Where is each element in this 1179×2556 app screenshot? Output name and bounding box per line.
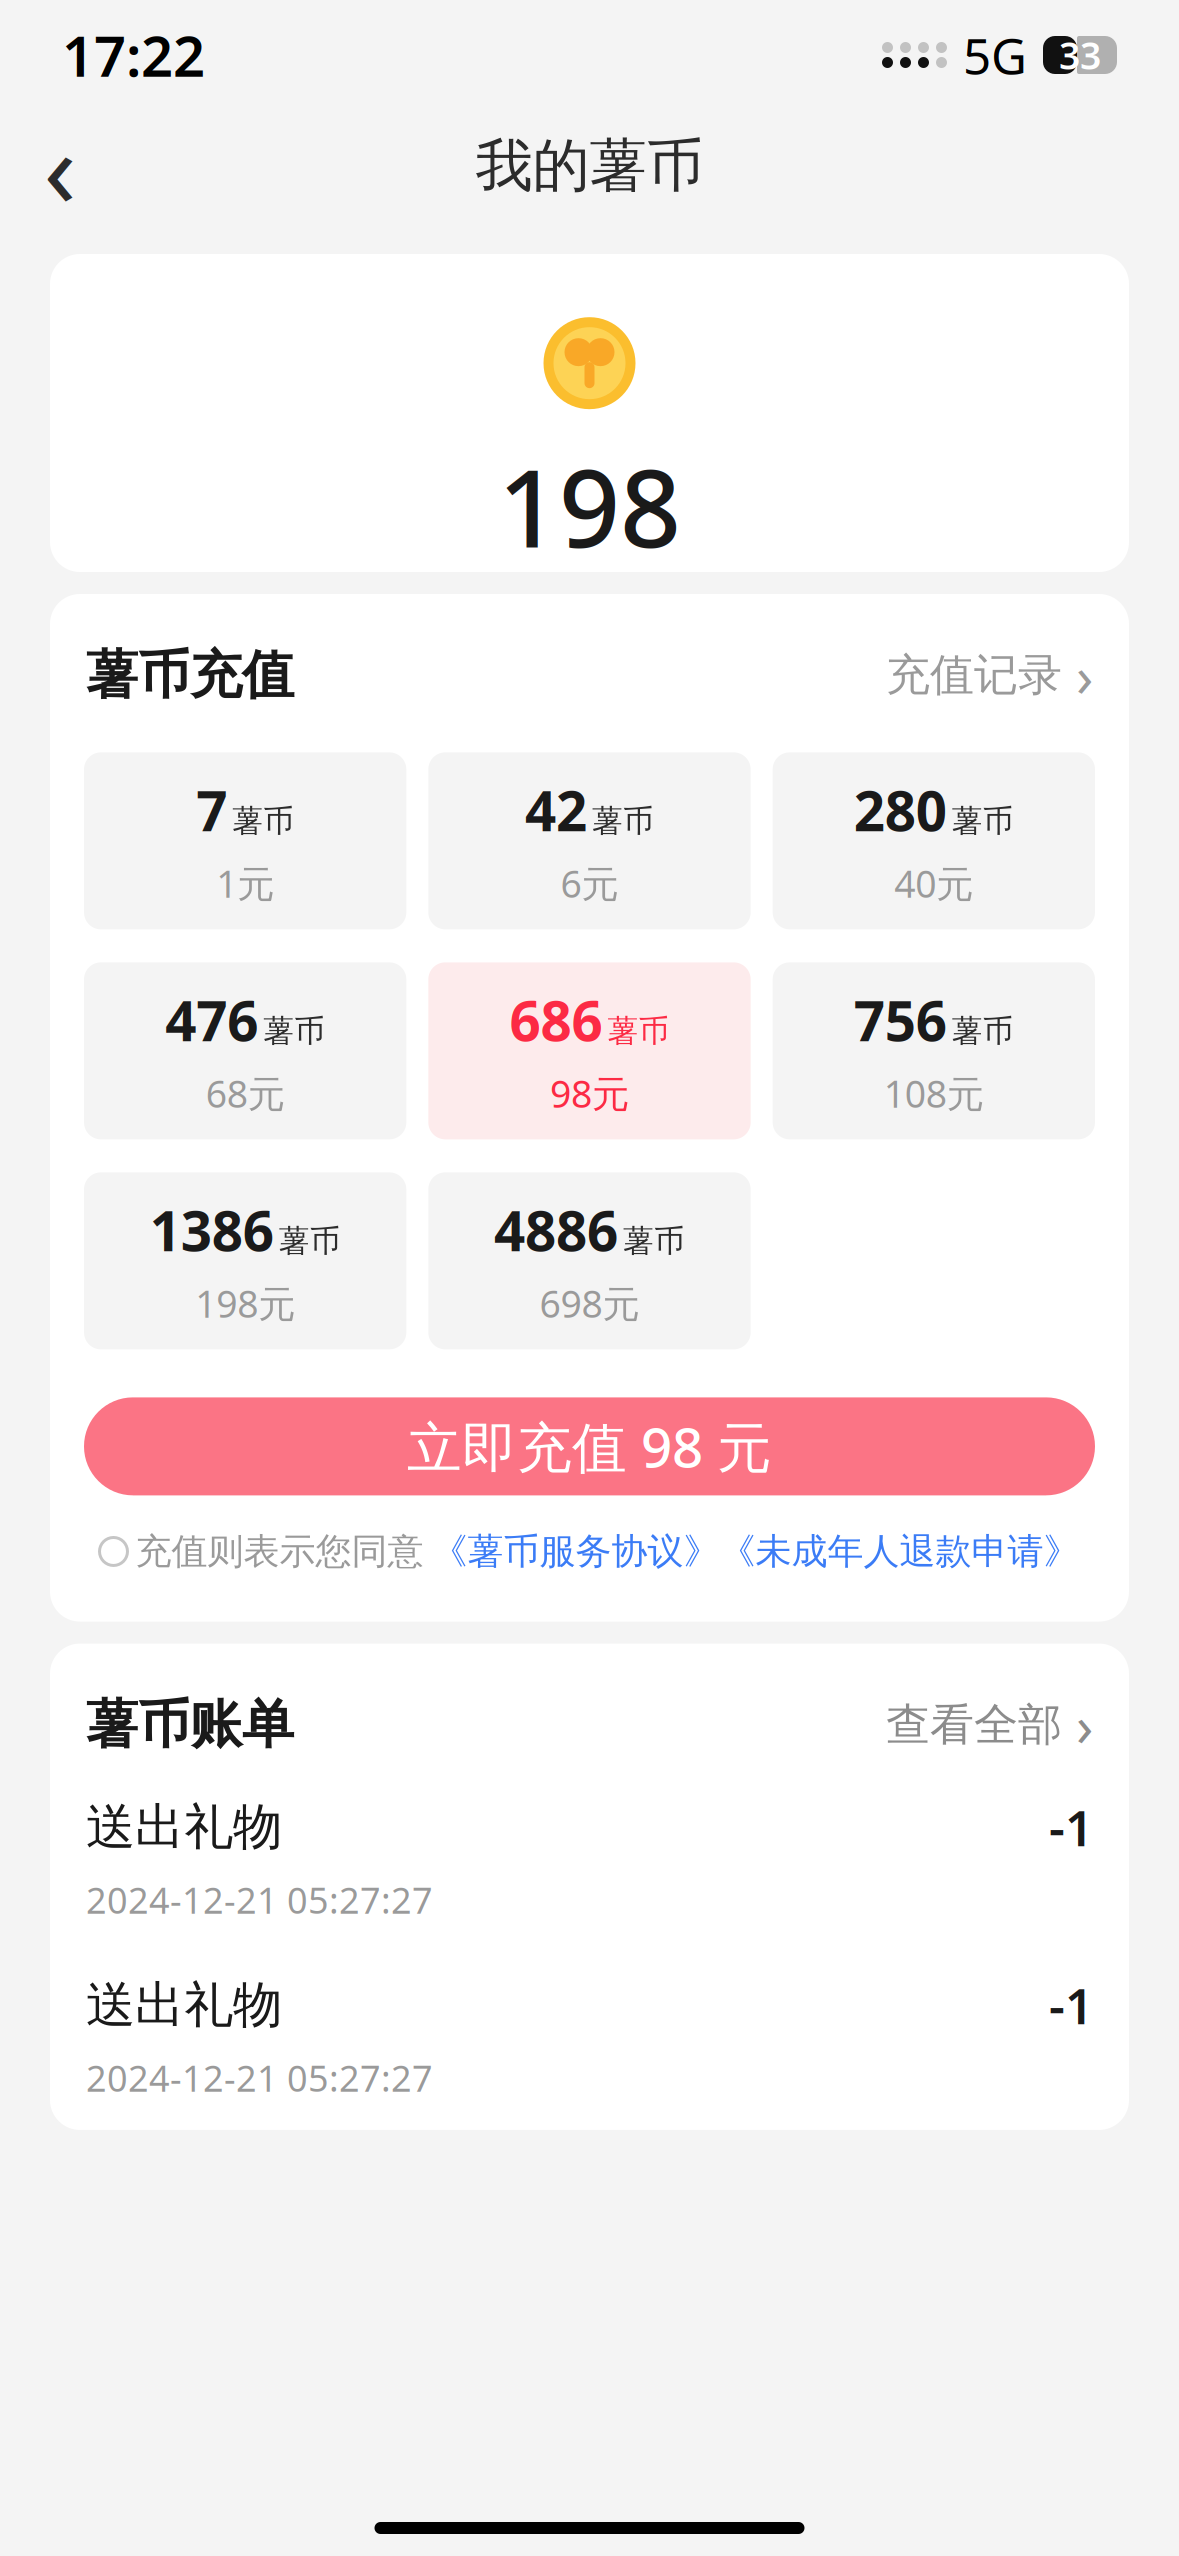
staticText: 7 [196,774,227,846]
staticText: 薯币 [592,802,654,840]
staticText: 送出礼物 [86,1797,282,1857]
staticText: 充值则表示您同意 [135,1529,423,1574]
staticText: 薯币充值 [86,643,294,707]
button[interactable]: 280 [773,752,1095,929]
staticText: 756 [854,984,947,1056]
staticText: 40元 [894,858,973,908]
staticText: › [1076,1688,1093,1762]
staticText: 1元 [216,858,274,908]
button[interactable]: 1386 [84,1172,406,1349]
button[interactable]: 送出礼物 [50,1784,1129,1934]
staticText: 198元 [195,1278,295,1328]
staticText: 6元 [560,858,618,908]
staticText: 充值记录 [886,648,1062,702]
button[interactable]: 476 [84,962,406,1139]
staticText: 476 [165,984,258,1056]
staticText: 《薯币服务协议》《未成年人退款申请》 [431,1529,1079,1574]
button[interactable]: 查看全部 [886,1688,1093,1762]
staticText: 5G [963,22,1027,88]
staticText: 108元 [884,1068,984,1118]
staticText: 薯币账单 [86,1693,294,1757]
staticText: 立即充值 98 元 [407,1410,772,1483]
staticText: 薯币 [952,802,1014,840]
staticText: › [1076,638,1093,712]
staticText: -1 [1049,1794,1093,1860]
staticText: 薯币 [623,1222,685,1260]
staticText: 我的薯币 [475,131,703,201]
staticText: 68元 [206,1068,285,1118]
button[interactable]: 42 [428,752,751,929]
button[interactable]: 充值记录 [886,638,1093,712]
staticText: 薯币 [952,1012,1014,1050]
staticText: 薯币 [263,1012,325,1050]
button[interactable]: Back [14,120,106,212]
staticText: 686 [509,984,602,1056]
staticText: 薯币 [607,1012,669,1050]
staticText: 42 [525,774,587,846]
staticText: 4886 [494,1194,618,1266]
staticText: 17:22 [62,18,205,92]
staticText: 698元 [539,1278,639,1328]
button[interactable]: 756 [773,962,1095,1139]
staticText: ‹ [43,95,76,237]
staticText: 查看全部 [886,1698,1062,1752]
staticText: 薯币 [232,802,294,840]
button[interactable]: 送出礼物 [50,1962,1129,2112]
staticText: 送出礼物 [86,1975,282,2035]
staticText: -1 [1049,1972,1093,2038]
staticText: 2024-12-21 05:27:27 [86,2054,433,2102]
button[interactable]: 充值则表示您同意 [99,1529,1079,1574]
staticText: 2024-12-21 05:27:27 [86,1876,433,1924]
staticText: 198 [498,435,681,577]
staticText: 33 [1059,30,1101,80]
staticText: 98元 [550,1068,629,1118]
staticText: 1386 [150,1194,274,1266]
staticText: 薯币 [279,1222,341,1260]
button[interactable]: 686 [428,962,751,1139]
button[interactable]: 4886 [428,1172,751,1349]
staticText: 280 [854,774,947,846]
button[interactable]: 7 [84,752,406,929]
button[interactable]: 立即充值 98 元 [84,1397,1095,1495]
